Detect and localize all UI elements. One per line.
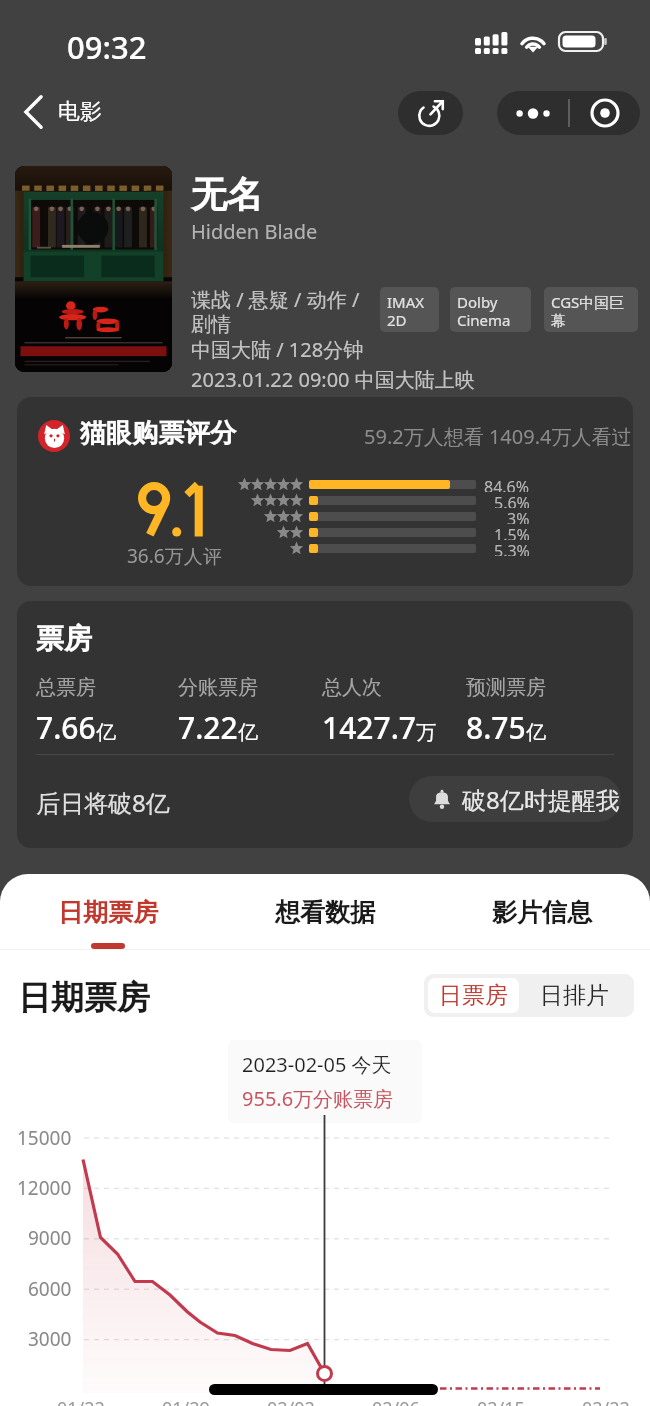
button[interactable]: 日期票房 xyxy=(0,874,216,949)
staticText: 万 xyxy=(416,720,436,745)
staticText: 01/29 xyxy=(162,1396,210,1406)
button[interactable]: Mini program xyxy=(570,91,640,135)
staticText: 亿 xyxy=(526,720,546,745)
staticText: 5.3% xyxy=(494,540,530,556)
staticText: 02/06 xyxy=(372,1396,420,1406)
staticText: 中国大陆 / 128分钟 xyxy=(191,336,364,363)
staticText: 6000 xyxy=(28,1276,72,1302)
staticText: 2023.01.22 09:00 中国大陆上映 xyxy=(191,366,475,393)
staticText: Hidden Blade xyxy=(191,218,318,245)
staticText: 票房 xyxy=(36,621,92,656)
staticText: 后日将破8亿 xyxy=(36,786,170,819)
button[interactable]: 日排片 xyxy=(519,978,630,1013)
staticText: Dolby Cinema xyxy=(457,292,511,331)
button[interactable]: 日票房 xyxy=(428,978,519,1013)
staticText: 36.6万人评 xyxy=(127,543,222,569)
staticText: 电影 xyxy=(58,98,102,126)
staticText: 02/02 xyxy=(267,1396,315,1406)
staticText: 破8亿时提醒我 xyxy=(462,783,620,816)
staticText: 总人次 xyxy=(322,675,382,700)
button[interactable]: 破8亿时提醒我 xyxy=(409,776,621,822)
staticText: 日票房 xyxy=(439,981,508,1010)
staticText: 总票房 xyxy=(36,675,96,700)
staticText: 9000 xyxy=(28,1225,72,1251)
button[interactable]: 影片信息 xyxy=(433,874,650,949)
staticText: 影片信息 xyxy=(492,897,592,928)
staticText: 1427.7 xyxy=(322,707,416,748)
staticText: 亿 xyxy=(238,720,258,745)
button[interactable]: Share xyxy=(398,91,463,135)
staticText: CGS中国巨 幕 xyxy=(551,292,625,331)
staticText: 955.6万分账票房 xyxy=(242,1085,394,1112)
staticText: 8.75 xyxy=(466,707,526,748)
staticText: 3% xyxy=(507,508,530,524)
staticText: 谍战 / 悬疑 / 动作 / 剧情 xyxy=(191,286,360,337)
staticText: 日排片 xyxy=(540,981,609,1010)
button[interactable]: More options xyxy=(497,91,568,135)
staticText: 亿 xyxy=(96,720,116,745)
staticText: 日期票房 xyxy=(58,897,158,928)
staticText: 01/22 xyxy=(57,1396,105,1406)
staticText: 02/15 xyxy=(477,1396,525,1406)
staticText: 无名 xyxy=(191,172,263,217)
staticText: IMAX 2D xyxy=(387,292,425,331)
staticText: 12000 xyxy=(17,1175,72,1201)
staticText: 1.5% xyxy=(494,524,530,540)
staticText: 2023-02-05 今天 xyxy=(242,1051,392,1078)
staticText: 想看数据 xyxy=(275,897,375,928)
button[interactable]: 电影 xyxy=(16,89,112,135)
button[interactable]: 想看数据 xyxy=(216,874,433,949)
staticText: 84.6% xyxy=(484,476,530,492)
staticText: 分账票房 xyxy=(178,675,258,700)
staticText: 59.2万人想看 1409.4万人看过 xyxy=(364,423,632,450)
staticText: 猫眼购票评分 xyxy=(80,417,236,450)
staticText: 7.66 xyxy=(36,707,96,748)
staticText: 日期票房 xyxy=(18,977,150,1019)
staticText: 02/22 xyxy=(582,1396,630,1406)
staticText: 5.6% xyxy=(494,492,530,508)
staticText: 15000 xyxy=(17,1125,72,1151)
staticText: 3000 xyxy=(28,1326,72,1352)
staticText: 预测票房 xyxy=(466,675,546,700)
staticText: 7.22 xyxy=(178,707,238,748)
staticText: 09:32 xyxy=(67,26,147,68)
